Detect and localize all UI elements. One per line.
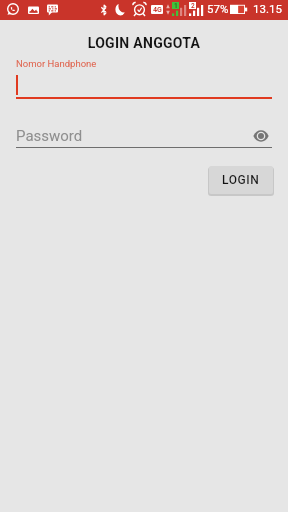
button[interactable]: LOGIN: [209, 166, 273, 194]
staticText: 57%: [207, 2, 229, 15]
staticText: 2: [191, 2, 195, 9]
staticText: 13.15: [253, 2, 282, 15]
staticText: Password: [16, 127, 83, 145]
staticText: 4G: [153, 6, 162, 14]
button[interactable]: Show password: [250, 124, 272, 147]
staticText: LOGIN: [222, 173, 260, 187]
staticText: LOGIN ANGGOTA: [0, 35, 288, 51]
staticText: Nomor Handphone: [16, 58, 97, 69]
staticText: 1: [174, 2, 178, 9]
